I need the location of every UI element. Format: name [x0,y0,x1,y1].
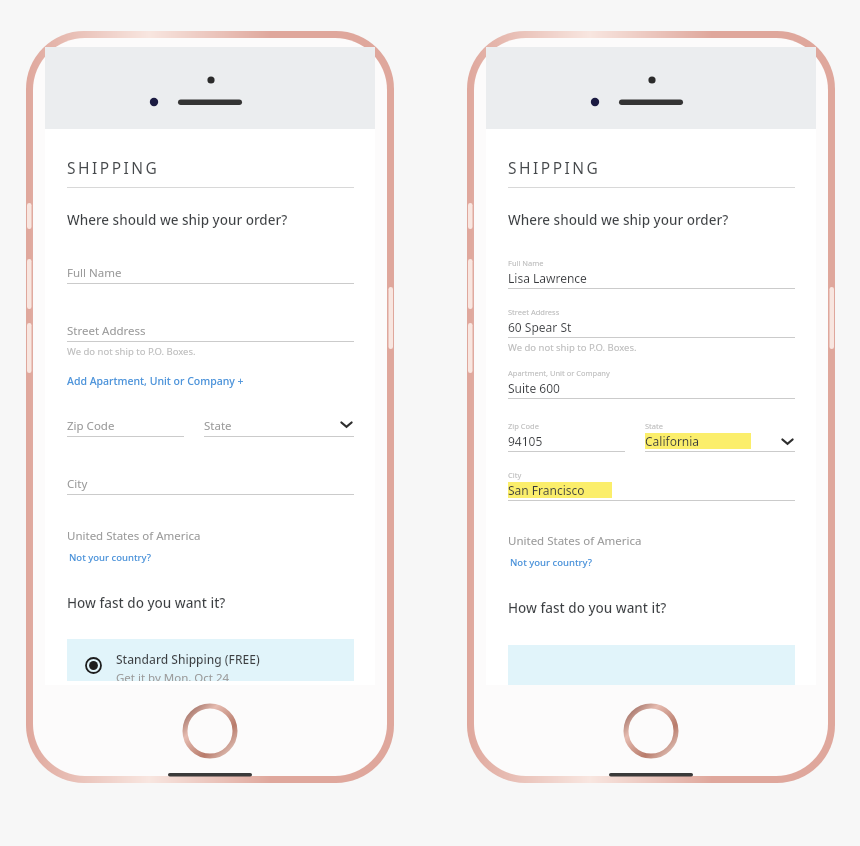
button[interactable]: Add Apartment, Unit or Company + [67,374,244,388]
staticText: Suite 600 [508,380,560,396]
staticText: SHIPPING [508,157,601,178]
button[interactable]: Street Address [508,307,795,354]
button[interactable]: Not your country? [510,556,593,569]
staticText: SHIPPING [67,157,160,178]
staticText: Where should we ship your order? [508,211,729,229]
staticText: Not your country? [69,551,152,564]
button[interactable]: Full Name [67,265,354,284]
button[interactable]: Street Address [67,323,354,358]
button[interactable]: Zip Code [508,421,625,452]
staticText: We do not ship to P.O. Boxes. [508,341,637,354]
button[interactable]: State [645,421,795,452]
staticText: Street Address [508,307,560,317]
button[interactable]: Zip Code [67,418,184,437]
staticText: California [645,433,700,449]
staticText: Add Apartment, Unit or Company + [67,374,244,388]
staticText: Apartment, Unit or Company [508,368,610,378]
staticText: State [645,421,663,431]
staticText: Full Name [67,265,122,281]
button[interactable]: State [204,418,354,437]
button[interactable]: Full Name [508,258,795,289]
staticText: Standard Shipping (FREE) [116,651,260,667]
staticText: How fast do you want it? [508,599,667,617]
button[interactable]: City [508,470,795,501]
button[interactable]: City [67,476,354,495]
staticText: Where should we ship your order? [67,211,288,229]
staticText: San Francisco [508,482,585,498]
staticText: City [508,470,522,480]
staticText: We do not ship to P.O. Boxes. [67,345,196,358]
staticText: Lisa Lawrence [508,270,587,286]
staticText: Get it by Mon, Oct 24 [116,670,230,681]
staticText: Not your country? [510,556,593,569]
other: Select state [780,436,795,447]
button[interactable]: Apartment, Unit or Company [508,368,795,399]
staticText: 60 Spear St [508,319,572,335]
staticText: Full Name [508,258,544,268]
staticText: How fast do you want it? [67,594,226,612]
button[interactable]: Standard Shipping (FREE) [67,639,354,681]
staticText: 94105 [508,433,543,449]
other: Select state [339,419,354,430]
staticText: State [204,418,232,434]
staticText: United States of America [508,533,642,549]
staticText: Zip Code [67,418,115,434]
staticText: United States of America [67,528,201,544]
staticText: City [67,476,88,492]
staticText: Street Address [67,323,146,339]
staticText: Zip Code [508,421,539,431]
button[interactable]: Not your country? [69,551,152,564]
